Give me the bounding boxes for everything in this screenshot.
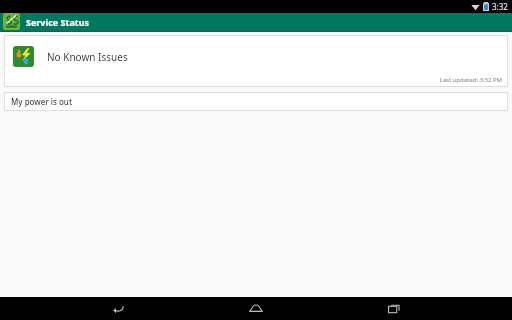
staticText: Last updated: 3:32 PM: [439, 76, 502, 84]
button[interactable]: App logo, navigate up: [3, 13, 20, 30]
staticText: 3:32: [492, 1, 508, 12]
staticText: No Known Issues: [47, 50, 128, 64]
button[interactable]: No Known Issues: [4, 35, 508, 87]
staticText: Service Status: [26, 16, 90, 28]
button[interactable]: My power is out: [4, 92, 508, 111]
button[interactable]: Recent apps: [374, 297, 414, 320]
staticText: My power is out: [11, 96, 72, 107]
button[interactable]: Back: [98, 297, 138, 320]
button[interactable]: Home: [236, 297, 276, 320]
